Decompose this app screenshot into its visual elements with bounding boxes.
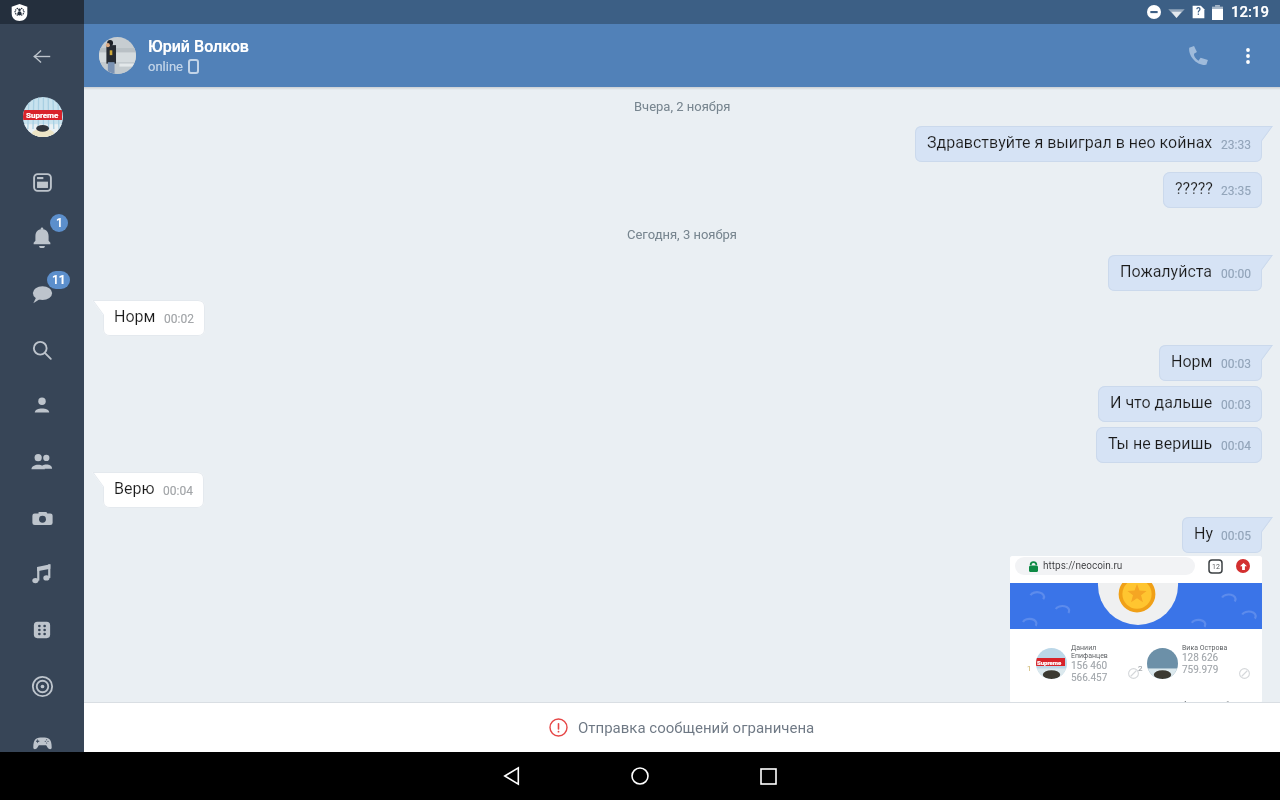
staticText: 00:00 — [1221, 267, 1251, 281]
staticText: Юрий Волков — [148, 37, 249, 56]
staticText: 00:03 — [1221, 398, 1251, 412]
staticText: 12:19 — [1231, 3, 1270, 21]
staticText: Отправка сообщений ограничена — [578, 719, 815, 737]
button[interactable]: Profile — [23, 97, 63, 137]
staticText: Алгоритм майнинга... — [1183, 700, 1255, 703]
staticText: Ну — [1194, 524, 1213, 543]
staticText: Здравствуйте я выиграл в нео койнах — [927, 133, 1213, 152]
button[interactable]: Пожалуйста — [1108, 255, 1273, 291]
staticText: 11 — [52, 273, 66, 287]
staticText: 566.457 — [1071, 672, 1108, 684]
staticText: И что дальше — [1110, 393, 1213, 412]
button[interactable]: Верю — [92, 472, 204, 508]
button[interactable]: Back — [476, 752, 548, 800]
staticText: 00:05 — [1221, 529, 1251, 543]
staticText: 759.979 — [1182, 664, 1219, 676]
staticText: Верю — [114, 479, 155, 498]
button[interactable]: More options — [1224, 32, 1272, 80]
button[interactable]: Music — [20, 552, 64, 596]
button[interactable]: News — [20, 160, 64, 204]
button[interactable]: Friends — [20, 440, 64, 484]
button[interactable]: Apps — [20, 608, 64, 652]
staticText: Supreme — [1037, 659, 1062, 666]
button[interactable]: Ну — [1182, 517, 1273, 553]
staticText: ? — [1196, 6, 1201, 18]
staticText: Ты не веришь — [1108, 434, 1213, 453]
button[interactable]: Back — [20, 34, 64, 78]
staticText: 23:35 — [1221, 184, 1251, 198]
staticText: Сегодня, 3 ноября — [627, 227, 737, 242]
staticText: 00:02 — [164, 312, 194, 326]
button[interactable]: Recent apps — [732, 752, 804, 800]
button[interactable]: Photos — [20, 496, 64, 540]
staticText: Норм — [114, 307, 156, 326]
button[interactable]: Messages — [20, 271, 64, 315]
button[interactable]: И что дальше — [1098, 386, 1262, 422]
staticText: 2 — [1138, 664, 1143, 673]
staticText: Вчера, 2 ноября — [634, 99, 731, 114]
button[interactable]: Норм — [92, 300, 205, 336]
button[interactable]: Games — [20, 720, 64, 764]
staticText: 00:04 — [1221, 439, 1251, 453]
staticText: Пожалуйста — [1120, 262, 1213, 281]
staticText: Даниил — [1071, 644, 1097, 652]
button[interactable] — [99, 37, 136, 74]
button[interactable]: Search — [20, 328, 64, 372]
staticText: 12 — [1212, 563, 1220, 571]
staticText: 1 — [1027, 664, 1032, 673]
staticText: online — [148, 59, 183, 74]
button[interactable]: Здравствуйте я выиграл в нео койнах — [915, 126, 1273, 162]
staticText: 00:04 — [163, 484, 193, 498]
staticText: Вика Острова — [1182, 644, 1228, 652]
staticText: 23:33 — [1221, 138, 1251, 152]
button[interactable]: ????? — [1163, 172, 1262, 208]
button[interactable]: Home — [604, 752, 676, 800]
button[interactable]: https://neocoin.ru — [1010, 556, 1262, 703]
staticText: 1 — [56, 216, 63, 230]
staticText: 00:03 — [1221, 357, 1251, 371]
button[interactable]: Ты не веришь — [1096, 427, 1262, 463]
button[interactable]: Profile — [20, 384, 64, 428]
staticText: https://neocoin.ru — [1043, 560, 1123, 572]
staticText: ????? — [1175, 179, 1213, 198]
button[interactable]: Call — [1174, 32, 1222, 80]
staticText: 128 626 — [1182, 652, 1219, 664]
staticText: 156 460 — [1071, 660, 1108, 672]
staticText: Supreme — [26, 111, 59, 120]
button[interactable]: Discover — [20, 664, 64, 708]
button[interactable]: Notifications — [20, 216, 64, 260]
staticText: Норм — [1171, 352, 1213, 371]
staticText: Епифанцев — [1071, 652, 1108, 660]
button[interactable]: Норм — [1159, 345, 1273, 381]
